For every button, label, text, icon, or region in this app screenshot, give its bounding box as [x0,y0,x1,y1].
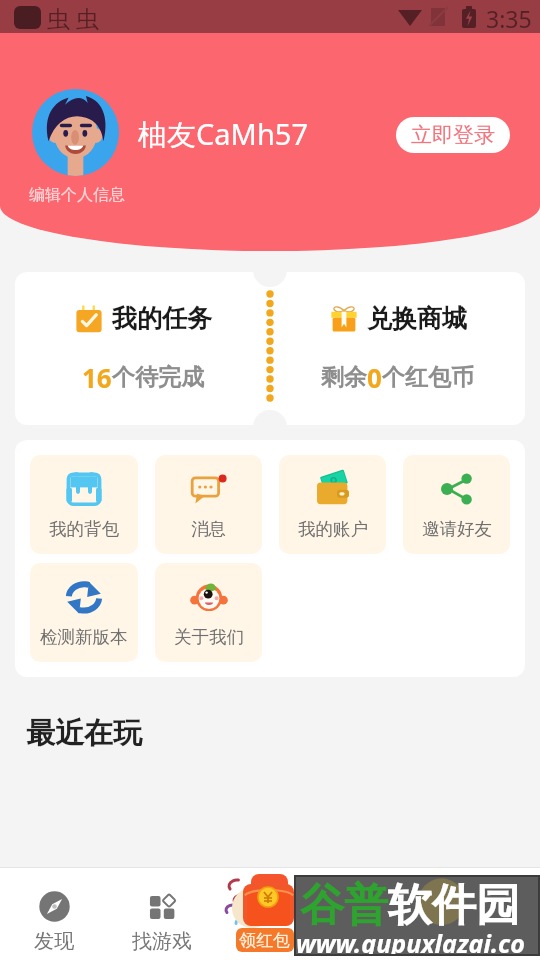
button[interactable]: 领红包 [225,870,315,960]
staticText: 个红包币 [382,363,474,392]
button[interactable]: 消息 [155,455,262,554]
staticText: 我的 [466,929,506,954]
staticText: 检测新版本 [40,626,128,648]
staticText: 剩余 [321,363,367,392]
staticText: 最近在玩 [26,715,142,752]
staticText: 3:35 [486,3,532,34]
staticText: www.gupuxlazai.com [296,926,540,960]
staticText: 个待完成 [112,363,204,392]
button[interactable]: 兑换商城 [270,272,525,425]
staticText: 发现 [34,929,74,954]
staticText: 消息 [191,518,226,540]
button[interactable]: 发现 [0,868,108,960]
button[interactable]: 我的任务 [15,272,270,425]
staticText: 找游戏 [132,929,192,954]
staticText: 软件园 [388,878,520,933]
staticText: 谷普 [300,878,388,933]
button[interactable]: 头像 [32,89,119,176]
staticText: 兑换商城 [367,303,467,334]
button[interactable]: 我的背包 [30,455,138,554]
staticText: 我的背包 [49,518,119,540]
button[interactable]: 排行榜 [324,868,432,960]
button[interactable]: 检测新版本 [30,563,138,662]
staticText: 关于我们 [174,626,244,648]
button[interactable]: 找游戏 [108,868,216,960]
button[interactable]: 我的 [432,868,540,960]
button[interactable]: 我的账户 [279,455,386,554]
button[interactable]: 邀请好友 [403,455,510,554]
staticText: 虫 虫 [47,2,99,33]
staticText: 领红包 [239,930,290,951]
button[interactable]: 立即登录 [396,117,510,153]
staticText: 立即登录 [411,122,495,148]
staticText: 邀请好友 [422,518,492,540]
staticText: 排行榜 [348,929,408,954]
staticText: 16 [82,360,112,395]
button[interactable]: 编辑个人信息 [29,185,125,205]
staticText: 柚友CaMh57 [138,114,308,154]
staticText: 我的任务 [112,303,212,334]
staticText: 我的账户 [298,518,368,540]
button[interactable]: 关于我们 [155,563,262,662]
staticText: 0 [367,360,382,395]
